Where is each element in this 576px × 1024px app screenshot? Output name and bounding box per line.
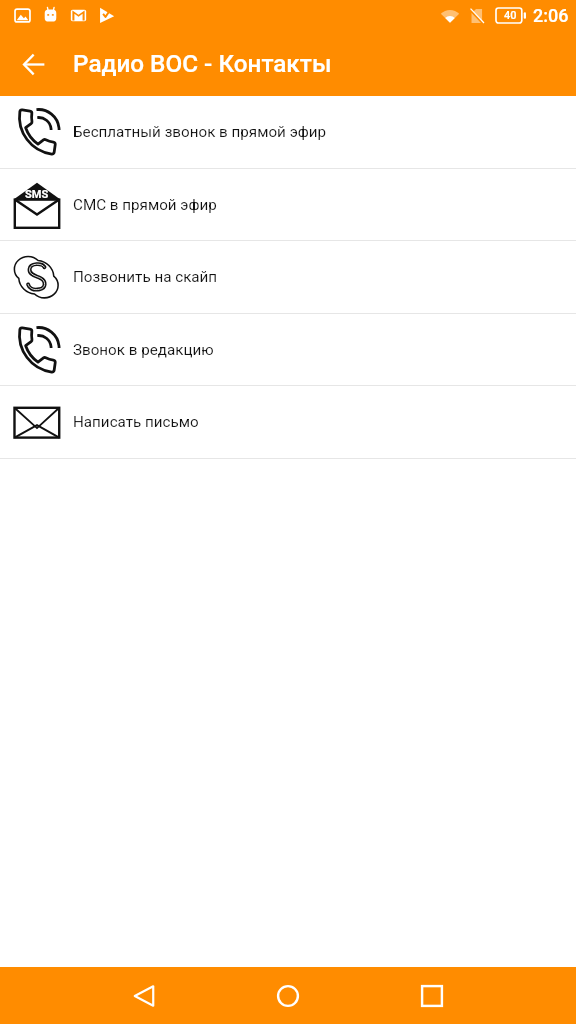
staticText: SMS [25, 188, 49, 201]
staticText: Написать письмо [73, 413, 199, 431]
staticText: Позвонить на скайп [73, 268, 218, 286]
button[interactable]: Back [12, 42, 56, 86]
button[interactable]: Позвонить на скайп [0, 241, 576, 313]
button[interactable]: Написать письмо [0, 386, 576, 458]
button[interactable]: Back [96, 967, 192, 1024]
button[interactable]: Звонок в редакцию [0, 314, 576, 385]
staticText: 2:06 [533, 5, 569, 26]
button[interactable]: Home [240, 967, 336, 1024]
button[interactable]: SMS [0, 169, 576, 240]
staticText: Звонок в редакцию [73, 341, 214, 359]
button[interactable]: Бесплатный звонок в прямой эфир [0, 96, 576, 168]
staticText: СМС в прямой эфир [73, 196, 217, 214]
staticText: Радио ВОС - Контакты [73, 49, 332, 77]
staticText: 40 [504, 9, 517, 22]
staticText: Бесплатный звонок в прямой эфир [73, 123, 327, 141]
button[interactable]: Recent apps [384, 967, 480, 1024]
